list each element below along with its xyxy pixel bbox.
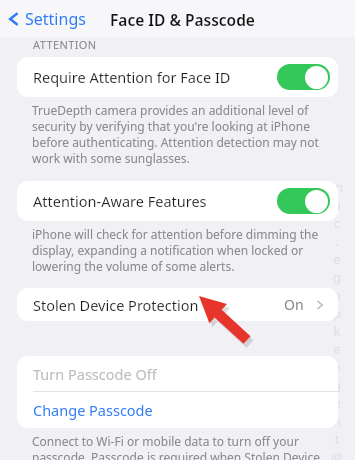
staticText: security by verifying that you're lookin… bbox=[32, 118, 310, 134]
staticText: a bbox=[330, 286, 344, 304]
staticText: Change Passcode bbox=[33, 400, 153, 420]
button[interactable]: Change Passcode bbox=[17, 392, 338, 428]
staticText: @ bbox=[330, 448, 344, 460]
staticText: Face ID & Passcode bbox=[110, 9, 255, 30]
staticText: o bbox=[330, 196, 344, 214]
staticText: h bbox=[330, 412, 344, 430]
staticText: Attention-Aware Features bbox=[33, 191, 207, 211]
staticText: g bbox=[330, 268, 344, 286]
staticText: before authenticating. Attention detecti… bbox=[32, 134, 319, 150]
button[interactable]: Attention-Aware Features bbox=[17, 181, 338, 221]
staticText: iPhone will check for attention before d… bbox=[32, 226, 319, 242]
staticText: ATTENTION bbox=[33, 37, 97, 52]
staticText: Settings bbox=[25, 8, 86, 30]
staticText: Stolen Device Protection bbox=[33, 295, 199, 315]
staticText: passcode. Passcode is required when Stol… bbox=[32, 449, 320, 460]
staticText: On bbox=[284, 295, 304, 314]
staticText: g bbox=[330, 376, 344, 394]
staticText: Connect to Wi-Fi or mobile data to turn … bbox=[32, 433, 299, 449]
staticText: e bbox=[330, 250, 344, 268]
staticText: m bbox=[330, 178, 344, 196]
button[interactable]: Toggle on bbox=[277, 64, 330, 90]
staticText: display, expanding a notification when l… bbox=[32, 242, 304, 258]
staticText: e bbox=[330, 394, 344, 412]
staticText: work with some sunglasses. bbox=[32, 150, 190, 166]
staticText: lowering the volume of some alerts. bbox=[32, 258, 235, 274]
button[interactable]: Turn Passcode Off bbox=[17, 356, 338, 391]
other: Annotation arrow bbox=[0, 0, 355, 460]
staticText: p bbox=[330, 304, 344, 322]
button[interactable]: Require Attention for Face ID bbox=[17, 57, 338, 97]
staticText: Turn Passcode Off bbox=[33, 364, 157, 384]
staticText: e bbox=[330, 358, 344, 376]
button[interactable]: Toggle on bbox=[277, 188, 330, 214]
staticText: e bbox=[330, 340, 344, 358]
staticText: Require Attention for Face ID bbox=[33, 67, 231, 87]
staticText: k bbox=[330, 322, 344, 340]
button[interactable]: Settings bbox=[6, 8, 86, 30]
staticText: c bbox=[330, 214, 344, 232]
button[interactable]: Stolen Device Protection bbox=[17, 288, 338, 321]
staticText: t bbox=[330, 430, 344, 448]
staticText: TrueDepth camera provides an additional … bbox=[32, 102, 309, 118]
